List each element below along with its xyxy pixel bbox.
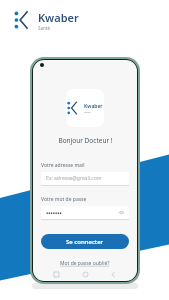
staticText: Santé [84,110,91,113]
button[interactable]: ••••••• [41,206,129,219]
button[interactable]: Kwaber Santé [14,9,79,31]
staticText: Santé [38,25,50,31]
staticText: Mot de passe oublié? [60,260,110,267]
staticText: Votre mot de passe [41,196,87,203]
staticText: Kwaber [38,10,79,25]
button[interactable]: Afficher le mot de passe [118,209,125,216]
button[interactable]: Recents [51,269,62,280]
button[interactable]: Back [108,269,119,280]
staticText: Kwaber [84,103,103,110]
button[interactable]: Se connecter [41,234,129,249]
button[interactable]: Ex: adresse@gmail.com [41,172,129,185]
staticText: Votre adresse mail [41,162,85,169]
button[interactable]: Mot de passe oublié? [41,260,129,267]
staticText: Se connecter [66,238,104,246]
staticText: Bonjour Docteur ! [58,136,113,145]
button[interactable]: Home [80,269,91,280]
staticText: Ex: adresse@gmail.com [46,175,102,182]
staticText: ••••••• [46,209,118,217]
